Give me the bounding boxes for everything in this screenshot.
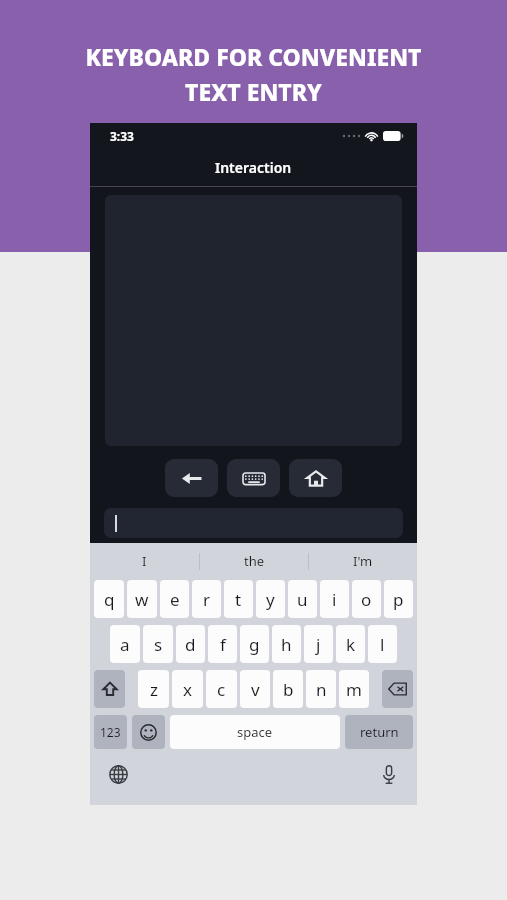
button[interactable]: v [240, 670, 270, 708]
button[interactable]: a [110, 625, 140, 663]
staticText: n [316, 678, 327, 701]
staticText: m [346, 678, 362, 701]
button[interactable]: c [206, 670, 237, 708]
button[interactable]: Emoji [132, 715, 165, 749]
button[interactable]: n [306, 670, 336, 708]
button[interactable]: Shift [94, 670, 125, 708]
staticText: a [120, 633, 130, 656]
staticText: y [266, 588, 275, 611]
staticText: t [235, 588, 242, 611]
button[interactable]: p [384, 580, 413, 618]
button[interactable]: the [200, 543, 308, 579]
button[interactable]: t [224, 580, 253, 618]
button[interactable]: o [352, 580, 381, 618]
staticText: h [281, 633, 292, 656]
button[interactable]: Back [165, 459, 218, 497]
button[interactable]: z [138, 670, 169, 708]
staticText: the [244, 552, 265, 570]
button[interactable]: r [192, 580, 221, 618]
staticText: u [297, 588, 308, 611]
staticText: KEYBOARD FOR CONVENIENT [85, 41, 422, 72]
staticText: c [217, 678, 226, 701]
button[interactable]: q [94, 580, 124, 618]
button[interactable]: x [172, 670, 203, 708]
staticText: i [332, 588, 337, 611]
button[interactable]: 123 [94, 715, 127, 749]
button[interactable]: I [90, 543, 199, 579]
staticText: w [135, 588, 149, 611]
staticText: TEXT ENTRY [185, 76, 322, 107]
staticText: o [361, 588, 372, 611]
staticText: s [154, 633, 163, 656]
button[interactable]: s [143, 625, 173, 663]
staticText: f [220, 633, 226, 656]
button[interactable]: w [127, 580, 157, 618]
staticText: r [203, 588, 211, 611]
button[interactable]: y [256, 580, 285, 618]
button[interactable]: h [272, 625, 301, 663]
staticText: space [237, 723, 273, 741]
staticText: z [150, 678, 158, 701]
button[interactable]: Text input [104, 508, 403, 538]
staticText: g [249, 633, 260, 656]
button[interactable]: Voice input [374, 759, 404, 789]
button[interactable]: Change keyboard language [103, 759, 133, 789]
button[interactable]: Backspace [382, 670, 413, 708]
staticText: e [170, 588, 180, 611]
staticText: 3:33 [110, 128, 134, 144]
button[interactable]: space [170, 715, 340, 749]
button[interactable]: Show keyboard [227, 459, 280, 497]
button[interactable]: Home [289, 459, 342, 497]
button[interactable]: k [336, 625, 365, 663]
staticText: p [393, 588, 404, 611]
button[interactable]: g [240, 625, 269, 663]
button[interactable]: d [176, 625, 205, 663]
button[interactable]: j [304, 625, 333, 663]
staticText: 123 [100, 724, 121, 740]
staticText: q [104, 588, 115, 611]
staticText: d [185, 633, 196, 656]
button[interactable]: m [339, 670, 369, 708]
button[interactable]: l [368, 625, 397, 663]
staticText: l [380, 633, 385, 656]
staticText: Interaction [215, 158, 292, 177]
staticText: b [283, 678, 294, 701]
button[interactable]: I'm [309, 543, 417, 579]
staticText: I [142, 552, 147, 570]
button[interactable]: u [288, 580, 317, 618]
button[interactable]: return [345, 715, 413, 749]
staticText: I'm [353, 552, 373, 570]
button[interactable]: b [273, 670, 303, 708]
staticText: return [360, 723, 399, 741]
button[interactable]: f [208, 625, 237, 663]
staticText: j [316, 633, 321, 656]
staticText: k [346, 633, 356, 656]
staticText: x [183, 678, 192, 701]
staticText: v [251, 678, 260, 701]
button[interactable]: i [320, 580, 349, 618]
button[interactable]: e [160, 580, 189, 618]
